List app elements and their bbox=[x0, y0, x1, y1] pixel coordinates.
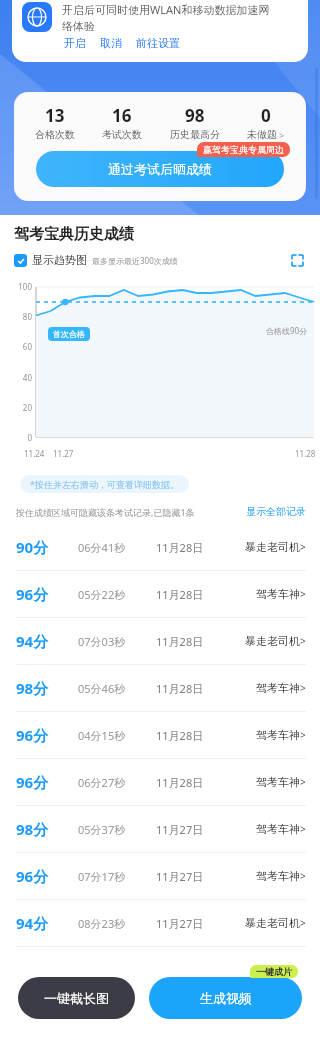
staticText: 生成视频 bbox=[200, 990, 252, 1006]
staticText: 96分 bbox=[16, 584, 78, 604]
button[interactable]: 96分 bbox=[0, 712, 320, 759]
staticText: 16 bbox=[112, 104, 132, 127]
button[interactable]: 13 bbox=[29, 104, 81, 141]
staticText: 开启后可同时使用WLAN和移动数据加速网 bbox=[62, 2, 270, 17]
staticText: 08分23秒 bbox=[78, 916, 156, 931]
staticText: 11月28日 bbox=[156, 728, 222, 743]
staticText: 07分17秒 bbox=[78, 869, 156, 884]
button[interactable]: 显示趋势图 bbox=[14, 253, 87, 267]
button[interactable]: 96分 bbox=[0, 759, 320, 806]
button[interactable]: 96分 bbox=[0, 571, 320, 618]
staticText: 一键截长图 bbox=[44, 990, 109, 1006]
staticText: 96分 bbox=[16, 772, 78, 792]
staticText: 11月27日 bbox=[156, 869, 222, 884]
staticText: 98 bbox=[185, 104, 205, 127]
staticText: 驾考车神 bbox=[256, 587, 300, 601]
staticText: 赢驾考宝典专属周边 bbox=[203, 144, 284, 155]
staticText: 11.28 bbox=[295, 448, 316, 459]
button[interactable]: 全屏查看 bbox=[288, 251, 306, 269]
staticText: 94分 bbox=[16, 913, 78, 933]
staticText: > bbox=[300, 587, 306, 601]
staticText: 11.27 bbox=[53, 448, 74, 459]
button[interactable]: 98分 bbox=[0, 665, 320, 712]
button[interactable]: 98 bbox=[164, 104, 226, 141]
button[interactable]: 0 bbox=[241, 104, 291, 141]
staticText: 络体验 bbox=[62, 19, 95, 33]
staticText: 05分22秒 bbox=[78, 587, 156, 602]
staticText: > bbox=[300, 869, 306, 883]
staticText: 取消 bbox=[100, 36, 122, 50]
staticText: 0 bbox=[261, 104, 271, 127]
staticText: 一键成片 bbox=[256, 966, 292, 977]
staticText: > bbox=[300, 822, 306, 836]
button[interactable]: 96分 bbox=[0, 853, 320, 900]
staticText: 合格线90分 bbox=[266, 325, 308, 336]
staticText: 60 bbox=[0, 341, 32, 352]
staticText: 90分 bbox=[16, 537, 78, 557]
staticText: 96分 bbox=[16, 725, 78, 745]
staticText: 显示趋势图 bbox=[32, 253, 87, 267]
button[interactable]: 一键截长图 bbox=[18, 977, 135, 1019]
staticText: 按住成绩区域可隐藏该条考试记录,已隐藏1条 bbox=[16, 506, 195, 518]
staticText: 94分 bbox=[16, 631, 78, 651]
staticText: 开启 bbox=[64, 36, 86, 50]
staticText: 11月28日 bbox=[156, 587, 222, 602]
staticText: 暴走老司机 bbox=[245, 540, 300, 554]
staticText: 0 bbox=[0, 432, 32, 443]
staticText: 驾考车神 bbox=[256, 822, 300, 836]
staticText: 合格次数 bbox=[35, 128, 75, 141]
staticText: 暴走老司机 bbox=[245, 634, 300, 648]
button[interactable]: 98分 bbox=[0, 806, 320, 853]
staticText: 未做题 bbox=[247, 128, 277, 141]
staticText: 驾考车神 bbox=[256, 775, 300, 789]
staticText: 40 bbox=[0, 372, 32, 383]
button[interactable]: 通过考试后晒成绩 bbox=[36, 151, 284, 187]
staticText: 05分37秒 bbox=[78, 822, 156, 837]
staticText: 驾考宝典历史成绩 bbox=[14, 225, 134, 244]
button[interactable]: 前往设置 bbox=[136, 36, 194, 50]
staticText: 前往设置 bbox=[136, 36, 180, 50]
staticText: 通过考试后晒成绩 bbox=[108, 161, 212, 177]
staticText: 80 bbox=[0, 311, 32, 322]
staticText: 98分 bbox=[16, 678, 78, 698]
staticText: 11月28日 bbox=[156, 540, 222, 555]
staticText: 显示全部记录 bbox=[246, 505, 306, 518]
staticText: 04分15秒 bbox=[78, 728, 156, 743]
staticText: 96分 bbox=[16, 866, 78, 886]
staticText: 100 bbox=[0, 281, 32, 292]
staticText: 05分46秒 bbox=[78, 681, 156, 696]
button[interactable]: 取消 bbox=[100, 36, 136, 50]
staticText: 驾考车神 bbox=[256, 681, 300, 695]
staticText: 最多显示最近300次成绩 bbox=[92, 255, 178, 266]
staticText: 历史最高分 bbox=[170, 128, 220, 141]
staticText: 11月27日 bbox=[156, 916, 222, 931]
button[interactable]: 16 bbox=[96, 104, 148, 141]
staticText: 98分 bbox=[16, 819, 78, 839]
staticText: 11.24 bbox=[24, 448, 45, 459]
button[interactable]: 生成视频 bbox=[149, 977, 302, 1019]
staticText: > bbox=[300, 681, 306, 695]
button[interactable]: 显示全部记录 bbox=[246, 505, 306, 518]
button[interactable]: 开启 bbox=[64, 36, 100, 50]
staticText: 11月28日 bbox=[156, 681, 222, 696]
staticText: 07分03秒 bbox=[78, 634, 156, 649]
staticText: > bbox=[279, 129, 285, 141]
staticText: > bbox=[300, 540, 306, 554]
staticText: 20 bbox=[0, 402, 32, 413]
staticText: > bbox=[300, 775, 306, 789]
button[interactable]: 90分 bbox=[0, 524, 320, 571]
staticText: > bbox=[300, 634, 306, 648]
button[interactable]: 94分 bbox=[0, 900, 320, 947]
staticText: 驾考车神 bbox=[256, 728, 300, 742]
staticText: 13 bbox=[45, 104, 65, 127]
staticText: 06分41秒 bbox=[78, 540, 156, 555]
staticText: 11月28日 bbox=[156, 634, 222, 649]
staticText: *按住并左右滑动，可查看详细数据。 bbox=[30, 478, 179, 490]
staticText: 11月28日 bbox=[156, 775, 222, 790]
staticText: > bbox=[300, 916, 306, 930]
staticText: 驾考车神 bbox=[256, 869, 300, 883]
staticText: 06分27秒 bbox=[78, 775, 156, 790]
staticText: 考试次数 bbox=[102, 128, 142, 141]
staticText: > bbox=[300, 728, 306, 742]
button[interactable]: 94分 bbox=[0, 618, 320, 665]
